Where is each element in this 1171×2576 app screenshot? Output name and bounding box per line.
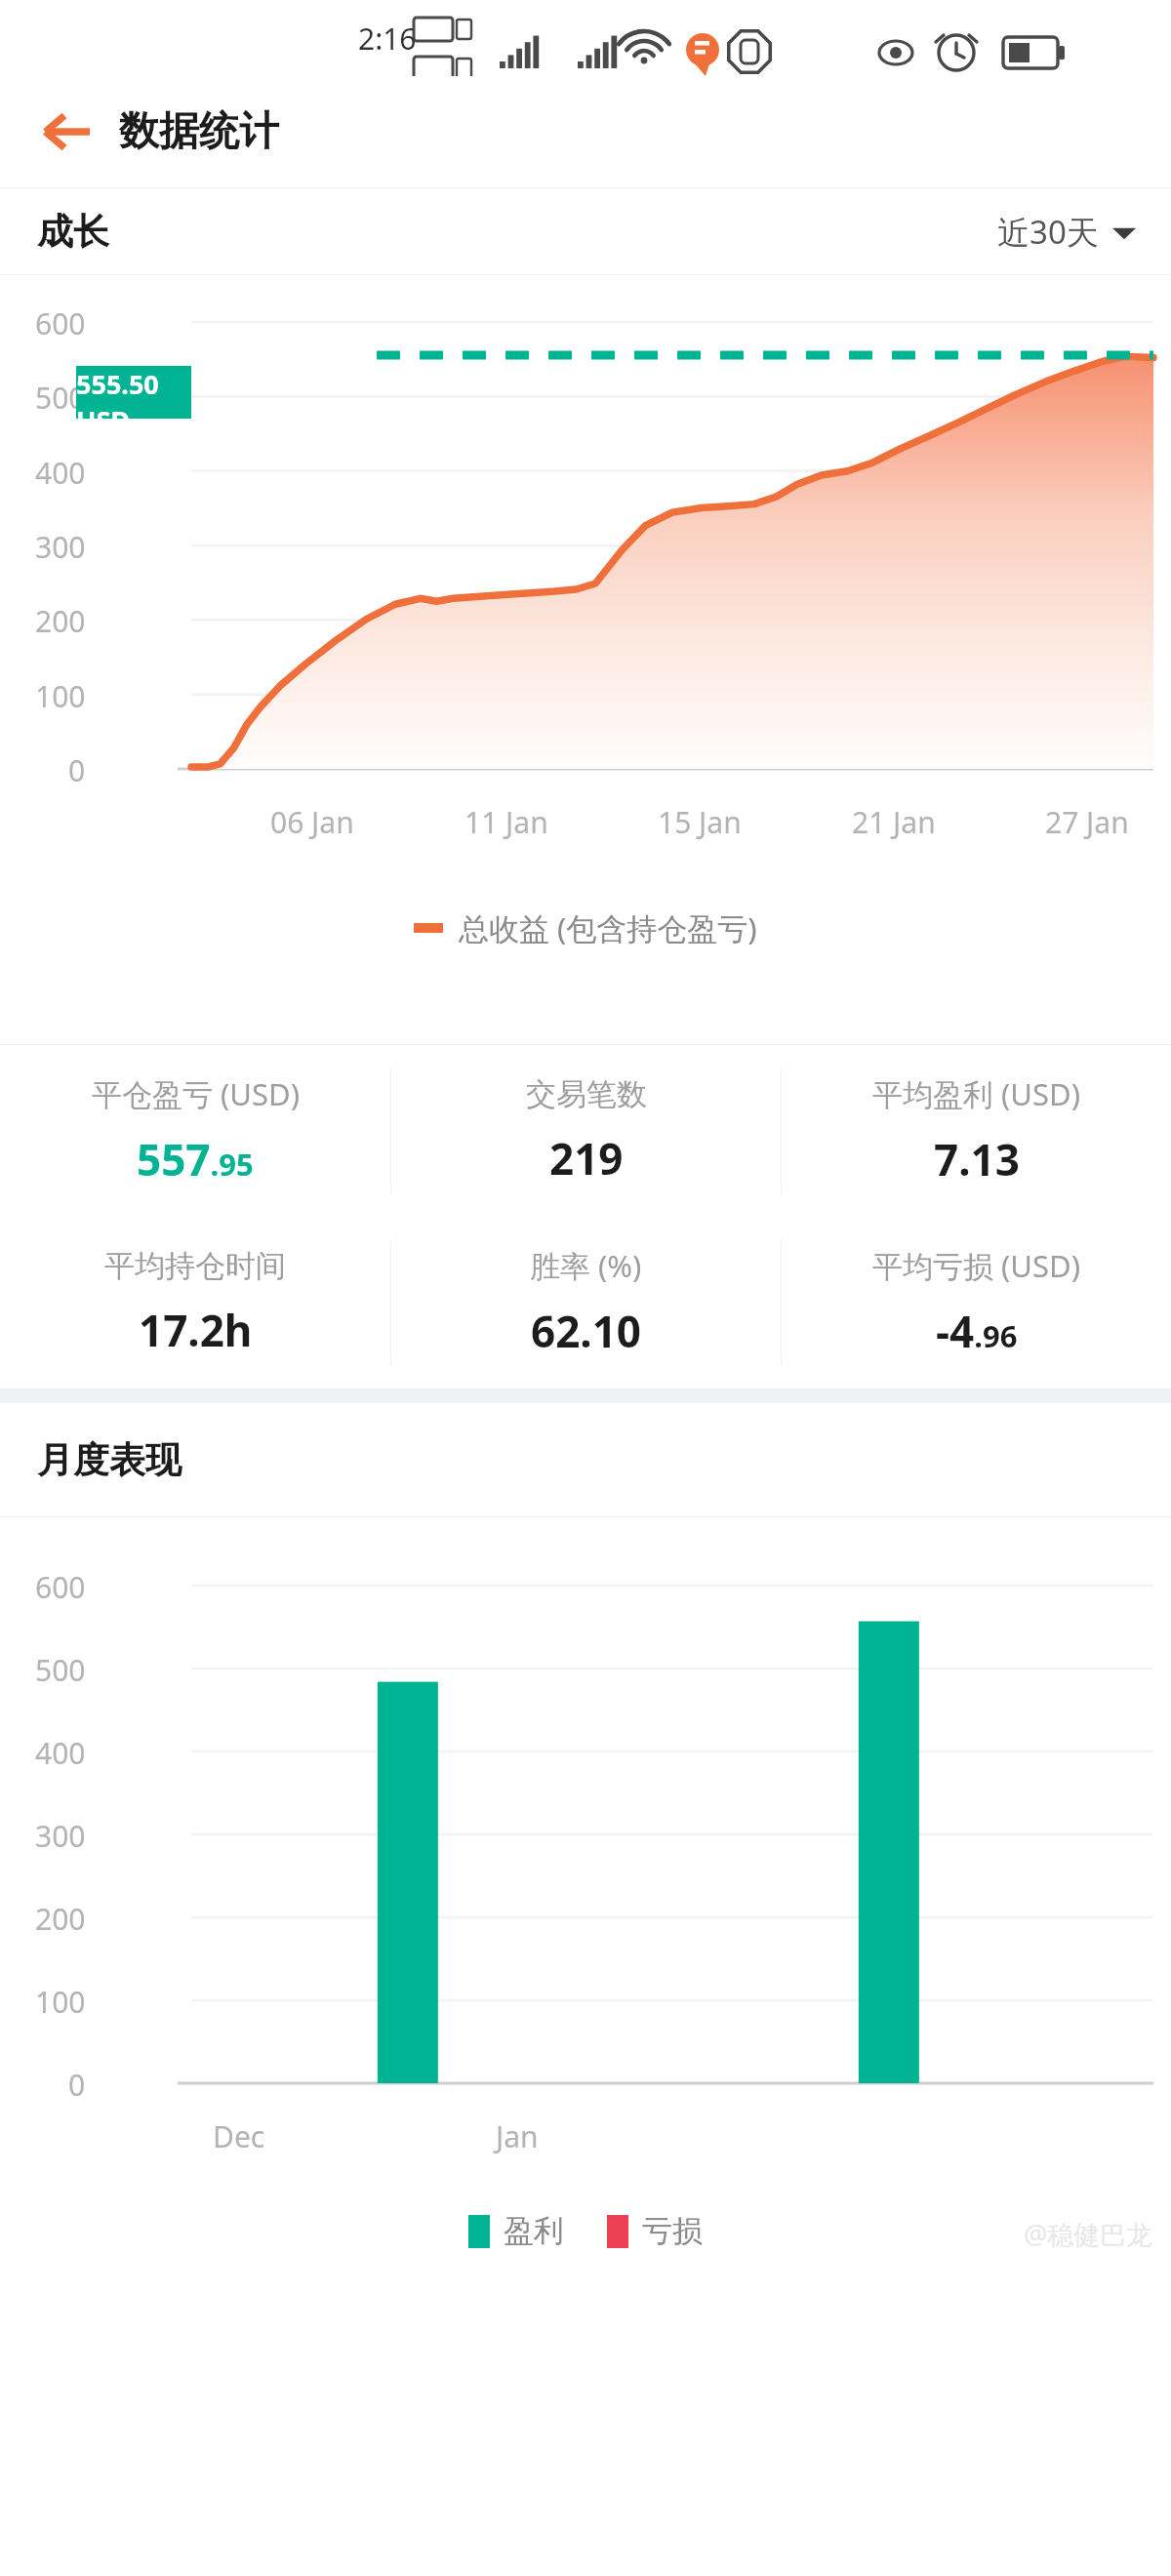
staticText: 亏损 <box>642 2212 703 2250</box>
staticText: 0 <box>68 750 86 790</box>
staticText: 555.50 USD <box>76 366 191 419</box>
staticText: 盈利 <box>504 2212 564 2250</box>
staticText: Jan <box>496 2116 539 2156</box>
staticText: 总收益 (包含持仓盈亏) <box>459 907 757 948</box>
staticText: Dec <box>213 2116 265 2156</box>
staticText: 成长 <box>37 209 109 255</box>
staticText: 交易笔数 <box>526 1075 647 1113</box>
staticText: 600 <box>35 1567 86 1607</box>
staticText: 400 <box>35 1733 86 1773</box>
staticText: 2:16 <box>358 19 417 59</box>
staticText: 557.95 <box>137 1130 254 1188</box>
staticText: 219 <box>549 1129 624 1187</box>
staticText: 胜率 (%) <box>530 1245 642 1286</box>
staticText: 500 <box>35 1650 86 1690</box>
staticText: 200 <box>35 1899 86 1939</box>
button[interactable]: 胜率 (%) <box>391 1217 781 1389</box>
staticText: 100 <box>35 676 86 716</box>
button[interactable]: 平均持仓时间 <box>0 1217 390 1389</box>
staticText: 100 <box>35 1982 86 2022</box>
staticText: 300 <box>35 1816 86 1856</box>
staticText: 600 <box>35 303 86 343</box>
staticText: 200 <box>35 601 86 641</box>
staticText: 17.2h <box>139 1301 253 1359</box>
staticText: 平均持仓时间 <box>104 1247 286 1285</box>
button[interactable]: 平仓盈亏 (USD) <box>0 1045 390 1217</box>
staticText: -4.96 <box>936 1302 1018 1360</box>
staticText: 300 <box>35 527 86 567</box>
staticText: 数据统计 <box>119 106 279 157</box>
button[interactable]: 平均盈利 (USD) <box>782 1045 1171 1217</box>
staticText: 平均盈利 (USD) <box>872 1073 1080 1114</box>
staticText: 06 Jan <box>270 802 354 842</box>
staticText: 月度表现 <box>37 1437 182 1483</box>
staticText: 平均亏损 (USD) <box>872 1245 1080 1286</box>
staticText: 21 Jan <box>852 802 936 842</box>
staticText: 27 Jan <box>1045 802 1129 842</box>
button[interactable]: 交易笔数 <box>391 1045 781 1217</box>
staticText: @稳健巴龙 <box>1024 2216 1153 2252</box>
staticText: 62.10 <box>531 1302 642 1360</box>
staticText: 500 <box>35 378 86 418</box>
button[interactable]: Back <box>29 95 103 169</box>
staticText: 0 <box>68 2065 86 2105</box>
button[interactable]: 近30天 <box>989 200 1144 263</box>
staticText: 平仓盈亏 (USD) <box>92 1073 300 1114</box>
staticText: 近30天 <box>997 210 1099 254</box>
staticText: 400 <box>35 453 86 493</box>
staticText: 7.13 <box>934 1130 1020 1188</box>
button[interactable]: 平均亏损 (USD) <box>782 1217 1171 1389</box>
staticText: 11 Jan <box>464 802 548 842</box>
staticText: 15 Jan <box>658 802 742 842</box>
